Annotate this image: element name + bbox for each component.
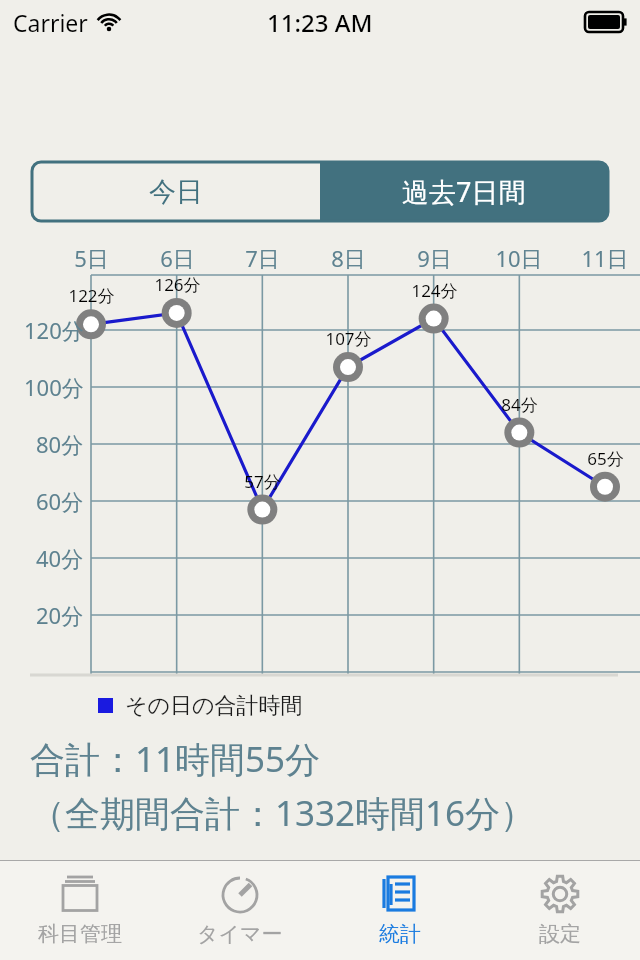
staticText: 80分 [36, 429, 84, 459]
staticText: 設定 [539, 921, 581, 947]
staticText: 7日 [245, 243, 280, 273]
staticText: 84分 [501, 393, 538, 416]
staticText: 11:23 AM [267, 6, 373, 39]
staticText: 10日 [495, 243, 543, 273]
staticText: 5日 [74, 243, 109, 273]
staticText: タイマー [197, 921, 283, 947]
staticText: 科目管理 [38, 921, 122, 947]
button[interactable]: 過去7日間 [320, 162, 608, 221]
button[interactable]: 今日 [32, 162, 320, 221]
staticText: 57分 [244, 470, 281, 493]
staticText: （全期間合計：1332時間16分） [30, 789, 536, 837]
staticText: 40分 [36, 543, 84, 573]
staticText: 120分 [24, 315, 84, 345]
staticText: 9日 [417, 243, 452, 273]
staticText: 100分 [24, 372, 84, 402]
staticText: 107分 [325, 327, 372, 350]
button[interactable]: 設定 [480, 861, 640, 960]
button[interactable]: 統計 [320, 861, 480, 960]
staticText: 過去7日間 [402, 173, 526, 210]
staticText: 11日 [581, 243, 629, 273]
staticText: 60分 [36, 486, 84, 516]
staticText: 今日 [149, 175, 203, 209]
staticText: Carrier [13, 7, 88, 38]
staticText: 統計 [379, 921, 421, 947]
staticText: 20分 [36, 600, 84, 630]
button[interactable]: 科目管理 [0, 861, 160, 960]
staticText: その日の合計時間 [125, 692, 303, 720]
staticText: 8日 [331, 243, 366, 273]
staticText: 6日 [160, 243, 195, 273]
button[interactable]: タイマー [160, 861, 320, 960]
staticText: 122分 [68, 284, 115, 307]
staticText: 126分 [154, 273, 201, 296]
staticText: 65分 [587, 447, 624, 470]
staticText: 124分 [411, 279, 458, 302]
staticText: 合計：11時間55分 [30, 735, 321, 783]
